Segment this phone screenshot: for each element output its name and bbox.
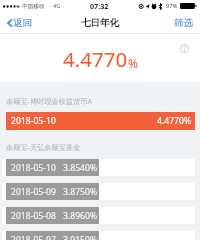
staticText: 4G	[53, 2, 61, 10]
staticText: 4.4770%	[157, 115, 192, 127]
button[interactable]: Help	[177, 41, 192, 56]
staticText: 2018-05-07	[11, 234, 56, 240]
staticText: 3.8960%	[63, 210, 98, 222]
staticText: 返回	[13, 17, 32, 29]
staticText: 余额宝-博时现金收益货币A	[6, 96, 92, 106]
staticText: 3.9150%	[63, 234, 98, 240]
button[interactable]: 返回	[0, 13, 38, 33]
button[interactable]: 筛选	[168, 13, 200, 33]
button[interactable]: 2018-05-10	[6, 112, 195, 130]
button[interactable]: 2018-05-07	[2, 231, 195, 240]
button[interactable]: 2018-05-08	[2, 207, 195, 224]
staticText: 2018-05-10	[11, 162, 56, 174]
staticText: 97%	[166, 2, 178, 10]
staticText: 3.8540%	[63, 162, 98, 174]
staticText: 2018-05-09	[11, 186, 56, 198]
staticText: 中国移动	[22, 3, 45, 10]
staticText: 余额宝-天弘余额宝基金	[6, 142, 81, 152]
staticText: 3.8750%	[63, 186, 98, 198]
staticText: %	[128, 55, 138, 71]
button[interactable]: 2018-05-10	[2, 159, 195, 176]
staticText: 2018-05-08	[11, 210, 56, 222]
staticText: 07:32	[90, 1, 109, 11]
button[interactable]: 2018-05-09	[2, 183, 195, 200]
staticText: 七日年化	[81, 17, 119, 29]
staticText: 4.4770	[63, 45, 128, 73]
staticText: 2018-05-10	[11, 115, 56, 127]
staticText: 筛选	[174, 17, 193, 29]
